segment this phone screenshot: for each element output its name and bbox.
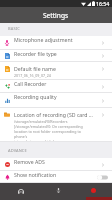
staticText: Default file name [14,65,56,72]
button[interactable]: Recording quality [0,93,112,108]
staticText: ADVANCE [8,148,27,153]
button[interactable]: Location of recording (SD card available… [0,108,112,142]
staticText: Location of recording (SD card available… [14,111,94,118]
staticText: 16:54 [96,0,110,7]
staticText: Recording quality [14,93,57,100]
staticText: Remove ADS [14,158,45,165]
staticText: Recorder file type [14,50,57,57]
staticText: 2017_06_16_09_07_24 [14,73,51,78]
button[interactable]: Remove ADS [0,158,112,171]
button[interactable] [97,175,108,180]
button[interactable]: Default file name [0,62,112,80]
button[interactable]: Show notification [0,171,112,183]
button[interactable]: Call Recorder [0,80,112,93]
staticText: Settings [43,11,69,20]
button[interactable]: Recorder file type [0,50,112,62]
button[interactable]: Recorder [42,183,74,200]
button[interactable]: Player [0,183,42,200]
staticText: BASIC [8,26,20,31]
staticText: /storage/emulated/0/Recorders [/storage/… [14,119,94,142]
button[interactable]: Microphone adjustment [0,36,112,50]
button[interactable]: Record [74,183,112,200]
staticText: Microphone adjustment [14,36,73,43]
staticText: Call Recorder [14,80,47,87]
staticText: Show notification [14,171,57,178]
